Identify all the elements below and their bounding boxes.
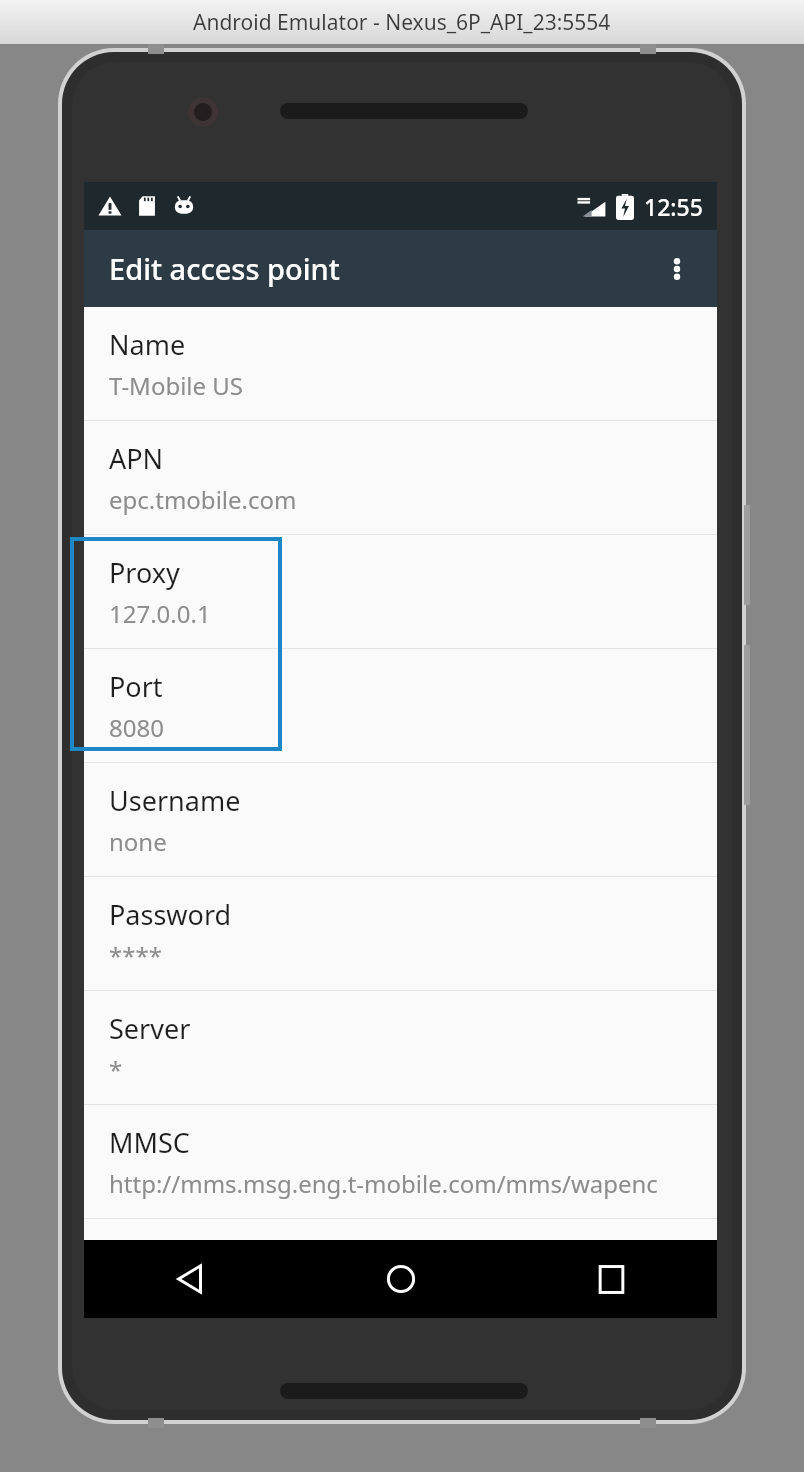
button[interactable]: Username [84, 763, 717, 876]
staticText: http://mms.msg.eng.t-mobile.com/mms/wape… [109, 1167, 658, 1200]
staticText: **** [109, 939, 162, 972]
button[interactable]: Port [84, 649, 717, 762]
staticText: T-Mobile US [109, 369, 244, 402]
staticText: MMSC [109, 1124, 190, 1161]
staticText: Name [109, 326, 186, 363]
staticText: Port [109, 668, 163, 705]
button[interactable]: Name [84, 307, 717, 420]
staticText: 8080 [109, 711, 164, 744]
staticText: * [109, 1053, 123, 1086]
staticText: Password [109, 896, 232, 933]
button[interactable]: Proxy [84, 535, 717, 648]
staticText: 12:55 [644, 191, 703, 222]
staticText: epc.tmobile.com [109, 483, 297, 516]
button[interactable]: MMSC [84, 1105, 717, 1218]
staticText: 127.0.0.1 [109, 597, 211, 630]
staticText: Android Emulator - Nexus_6P_API_23:5554 [193, 8, 611, 37]
staticText: Username [109, 782, 241, 819]
staticText: Proxy [109, 554, 180, 591]
staticText: Edit access point [109, 249, 340, 288]
button[interactable]: Home [295, 1240, 506, 1318]
button[interactable]: Back [84, 1240, 295, 1318]
staticText: none [109, 825, 167, 858]
staticText: APN [109, 440, 164, 477]
staticText: Server [109, 1010, 191, 1047]
button[interactable]: Server [84, 991, 717, 1104]
button[interactable]: Password [84, 877, 717, 990]
button[interactable]: APN [84, 421, 717, 534]
button[interactable]: More options [645, 237, 709, 301]
button[interactable]: Recent apps [506, 1240, 717, 1318]
